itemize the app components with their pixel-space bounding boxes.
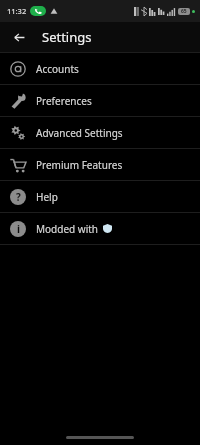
button[interactable]: Premium Features — [0, 149, 200, 180]
button[interactable]: ? — [0, 181, 200, 212]
staticText: Help — [36, 190, 58, 204]
staticText: i — [17, 222, 20, 236]
staticText: Accounts — [36, 62, 79, 76]
staticText: 11:32 — [7, 6, 27, 16]
staticText: Advanced Settings — [36, 126, 123, 140]
button[interactable]: Accounts — [0, 53, 200, 84]
staticText: Preferences — [36, 94, 92, 108]
button[interactable]: Back — [8, 26, 30, 48]
staticText: Premium Features — [36, 158, 123, 172]
staticText: ? — [16, 190, 21, 204]
staticText: 65 — [181, 8, 187, 15]
button[interactable]: Preferences — [0, 85, 200, 116]
staticText: Modded with — [36, 222, 99, 236]
button[interactable]: i — [0, 213, 200, 244]
button[interactable]: Advanced Settings — [0, 117, 200, 148]
staticText: Settings — [42, 28, 92, 46]
